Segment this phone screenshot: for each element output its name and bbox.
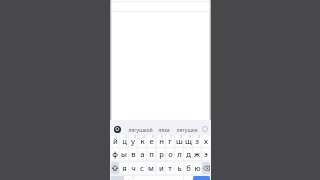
staticText: 0	[198, 135, 200, 139]
button[interactable]: ф	[111, 148, 119, 160]
button[interactable]: х	[202, 135, 210, 147]
staticText: щ	[185, 136, 192, 146]
button[interactable]	[202, 162, 210, 174]
button[interactable]	[111, 162, 119, 174]
staticText: ы	[121, 149, 127, 159]
staticText: в	[131, 149, 136, 159]
button[interactable]: лягушкой	[125, 125, 155, 134]
button[interactable]: н	[157, 135, 165, 147]
staticText: н	[159, 136, 164, 146]
staticText: у	[131, 136, 135, 146]
staticText: 1	[115, 135, 117, 139]
button[interactable]: ь	[175, 162, 183, 174]
staticText: ч	[131, 163, 136, 173]
staticText: к	[140, 136, 145, 146]
button[interactable]: ляха	[149, 125, 179, 134]
button[interactable]: с	[138, 162, 146, 174]
staticText: ляха	[158, 126, 170, 133]
staticText: 7	[170, 135, 172, 139]
button[interactable]: о	[166, 148, 174, 160]
staticText: лягушке	[176, 126, 198, 133]
button[interactable]: э	[202, 148, 210, 160]
staticText: з	[195, 136, 199, 146]
button[interactable]: л	[175, 148, 183, 160]
button[interactable]: ю	[193, 162, 201, 174]
staticText: э	[204, 149, 208, 159]
staticText: и	[159, 163, 164, 173]
staticText: р	[159, 149, 164, 159]
staticText: е	[149, 136, 154, 146]
button[interactable]: щ	[184, 135, 192, 147]
staticText: п	[149, 149, 154, 159]
button[interactable]	[193, 176, 210, 180]
staticText: г	[168, 136, 172, 146]
staticText: х	[204, 136, 208, 146]
staticText: ц	[122, 136, 127, 146]
button[interactable]: лягушке	[172, 125, 202, 134]
staticText: ю	[194, 163, 201, 173]
button[interactable]: т	[166, 162, 174, 174]
staticText: ш	[176, 136, 183, 146]
button[interactable]: р	[157, 148, 165, 160]
button[interactable]	[202, 126, 208, 132]
staticText: лягушкой	[128, 126, 153, 133]
staticText: ф	[112, 149, 118, 159]
button[interactable]: я	[120, 162, 128, 174]
staticText: т	[168, 163, 172, 173]
staticText: с	[140, 163, 144, 173]
staticText: а	[140, 149, 145, 159]
button[interactable]: г	[166, 135, 174, 147]
staticText: м	[148, 163, 154, 173]
staticText: 4	[143, 135, 145, 139]
staticText: б	[186, 163, 191, 173]
button[interactable]: к	[138, 135, 146, 147]
button[interactable]: д	[184, 148, 192, 160]
button[interactable]: ш	[175, 135, 183, 147]
button[interactable]: з	[193, 135, 201, 147]
staticText: л	[177, 149, 182, 159]
staticText: ж	[194, 149, 200, 159]
staticText: 5	[152, 135, 154, 139]
staticText: 8	[180, 135, 182, 139]
staticText: д	[186, 149, 191, 159]
button[interactable]: б	[184, 162, 192, 174]
staticText: 3	[134, 135, 136, 139]
button[interactable]: у	[129, 135, 137, 147]
button[interactable]: ж	[193, 148, 201, 160]
button[interactable]: ц	[120, 135, 128, 147]
button[interactable]: и	[157, 162, 165, 174]
button[interactable]: а	[138, 148, 146, 160]
button[interactable]	[124, 176, 132, 180]
button[interactable]: е	[147, 135, 155, 147]
button[interactable]	[114, 126, 121, 133]
button[interactable]: м	[147, 162, 155, 174]
button[interactable]: й	[111, 135, 119, 147]
staticText: я	[122, 163, 127, 173]
staticText: й	[113, 136, 118, 146]
staticText: 2	[125, 135, 127, 139]
button[interactable]: ы	[120, 148, 128, 160]
staticText: о	[168, 149, 173, 159]
button[interactable]: ч	[129, 162, 137, 174]
button[interactable]: в	[129, 148, 137, 160]
button[interactable]: п	[147, 148, 155, 160]
staticText: 9	[189, 135, 191, 139]
staticText: 6	[161, 135, 163, 139]
staticText: ь	[177, 163, 182, 173]
